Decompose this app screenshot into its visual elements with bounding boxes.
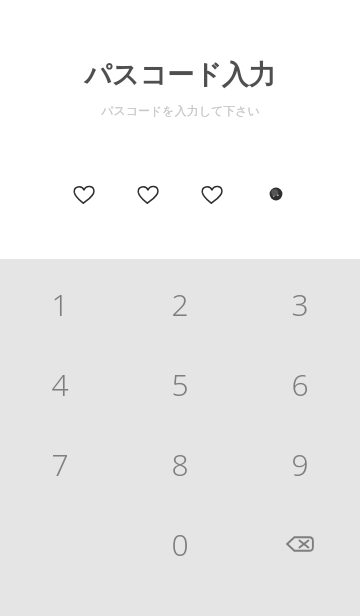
- staticText: 0: [171, 524, 189, 565]
- staticText: 7: [51, 444, 69, 485]
- button[interactable]: 8: [120, 424, 240, 504]
- button[interactable]: 9: [240, 424, 360, 504]
- staticText: 4: [51, 364, 69, 405]
- button[interactable]: 4: [0, 344, 120, 424]
- staticText: 9: [291, 444, 309, 485]
- button[interactable]: 1: [0, 264, 120, 344]
- staticText: 2: [171, 284, 189, 325]
- staticText: 8: [171, 444, 189, 485]
- staticText: パスコードを入力して下さい: [101, 103, 260, 118]
- staticText: 6: [291, 364, 309, 405]
- staticText: 1: [51, 284, 69, 325]
- button[interactable]: 0: [120, 504, 240, 584]
- button[interactable]: 7: [0, 424, 120, 504]
- staticText: 5: [171, 364, 189, 405]
- button[interactable]: Delete: [240, 504, 360, 584]
- button[interactable]: 2: [120, 264, 240, 344]
- staticText: パスコード入力: [84, 58, 276, 92]
- staticText: 3: [291, 284, 309, 325]
- button[interactable]: 5: [120, 344, 240, 424]
- button[interactable]: 3: [240, 264, 360, 344]
- button[interactable]: 6: [240, 344, 360, 424]
